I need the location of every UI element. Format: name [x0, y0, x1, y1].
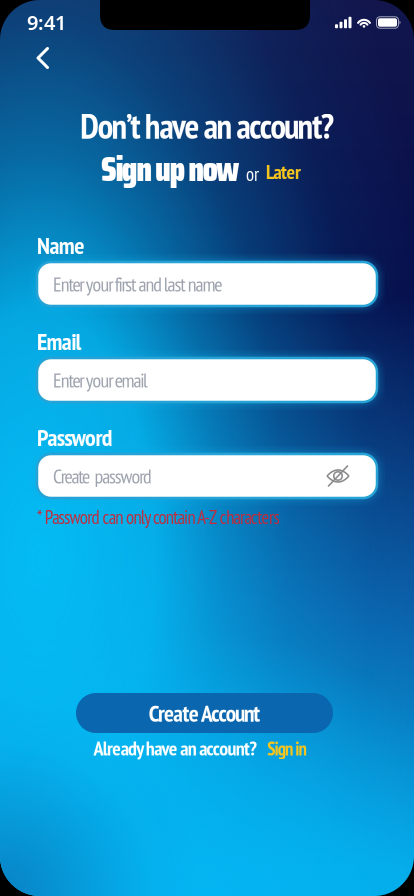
staticText: Later: [266, 159, 301, 185]
button[interactable]: [31, 42, 55, 74]
button[interactable]: Create password: [37, 454, 377, 498]
staticText: Password: [37, 421, 113, 453]
staticText: Enter your email: [53, 367, 148, 393]
button[interactable]: Create Account: [78, 693, 335, 733]
staticText: 9:41: [27, 9, 66, 36]
button[interactable]: Enter your email: [37, 358, 377, 402]
button[interactable]: Later: [266, 161, 301, 187]
staticText: Create password: [53, 463, 152, 489]
staticText: Create Account: [149, 698, 260, 728]
button[interactable]: Enter your first and last name: [37, 262, 377, 306]
staticText: Email: [37, 325, 82, 357]
button[interactable]: Sign in: [267, 736, 306, 761]
staticText: Enter your first and last name: [53, 271, 222, 297]
staticText: Already have an account?: [93, 735, 257, 761]
staticText: Sign in: [267, 736, 306, 761]
staticText: * Password can only contain A-Z characte…: [37, 505, 279, 529]
staticText: Don’t have an account?: [80, 104, 334, 148]
staticText: Sign up now: [101, 142, 239, 196]
staticText: Name: [37, 229, 84, 261]
staticText: or: [246, 162, 259, 186]
